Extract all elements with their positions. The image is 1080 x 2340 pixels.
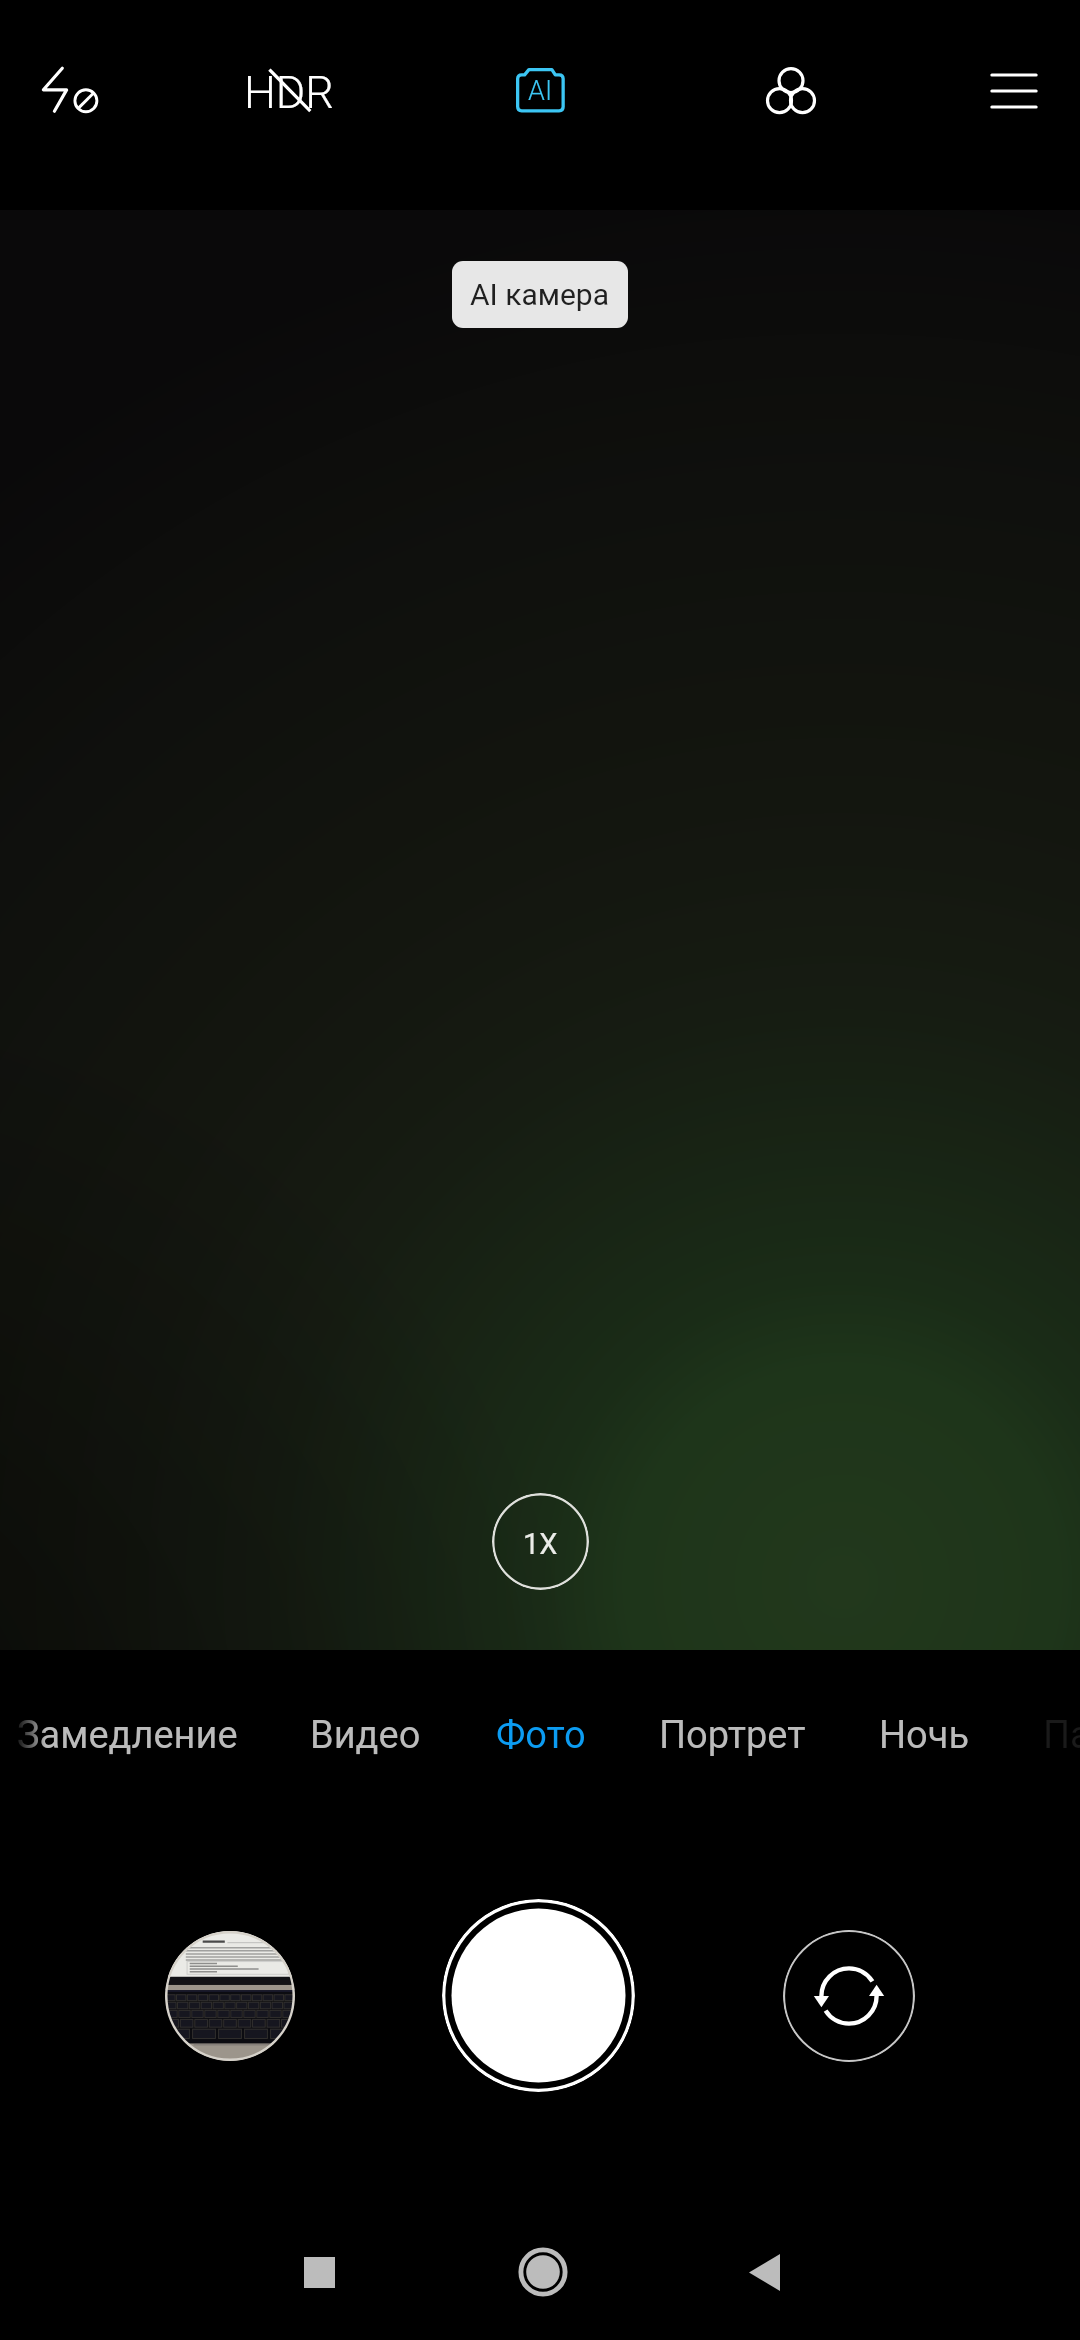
staticText: Замедление — [17, 1713, 238, 1758]
button[interactable]: Back — [714, 2222, 814, 2322]
button[interactable]: Фото — [496, 1680, 586, 1790]
button[interactable]: Zoom 1X — [492, 1493, 589, 1590]
button[interactable]: Colour filters — [726, 26, 856, 156]
button[interactable]: Замедление — [17, 1680, 238, 1790]
staticText: AI камера — [470, 277, 610, 312]
staticText: Портрет — [659, 1713, 806, 1758]
button[interactable]: Flash off — [5, 26, 135, 156]
staticText: Ночь — [879, 1713, 970, 1758]
button[interactable]: Take photo — [442, 1899, 635, 2092]
button[interactable]: Recents — [269, 2222, 369, 2322]
button[interactable]: AI камера — [452, 261, 628, 328]
staticText: Панорама — [1043, 1713, 1080, 1758]
button[interactable]: Портрет — [659, 1680, 806, 1790]
button[interactable]: Gallery — [165, 1931, 295, 2061]
button[interactable]: Menu — [949, 26, 1079, 156]
staticText: AI — [528, 75, 553, 107]
button[interactable]: AI scene detection — [475, 26, 605, 156]
button[interactable]: Видео — [310, 1680, 421, 1790]
button[interactable]: Home — [493, 2222, 593, 2322]
staticText: HDR — [244, 66, 334, 119]
button[interactable]: HDR off — [225, 26, 355, 156]
staticText: Видео — [310, 1713, 421, 1758]
button[interactable]: Switch camera — [783, 1930, 915, 2062]
button[interactable]: Панорама — [1043, 1680, 1080, 1790]
staticText: 1X — [523, 1527, 558, 1561]
button[interactable]: Ночь — [879, 1680, 970, 1790]
staticText: Фото — [496, 1713, 586, 1758]
